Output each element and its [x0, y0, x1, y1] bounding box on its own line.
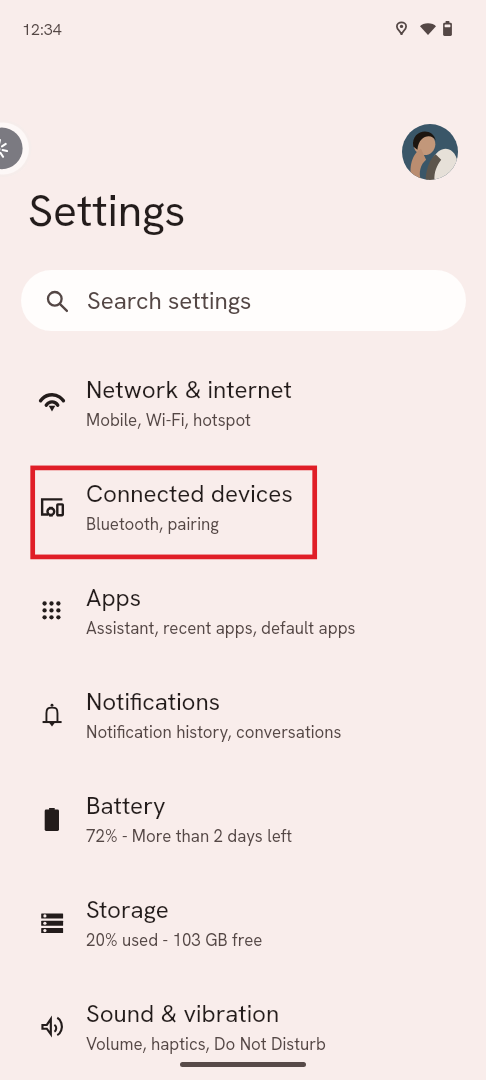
staticText: Bluetooth, pairing: [86, 513, 219, 535]
staticText: 12:34: [22, 19, 62, 40]
staticText: Mobile, Wi-Fi, hotspot: [86, 409, 251, 431]
staticText: Search settings: [87, 285, 252, 317]
staticText: Settings: [28, 181, 186, 239]
staticText: Notifications: [86, 686, 221, 718]
staticText: 20% used - 103 GB free: [86, 929, 263, 951]
staticText: Assistant, recent apps, default apps: [86, 617, 356, 639]
button[interactable]: Notifications: [0, 682, 486, 786]
button[interactable]: Storage: [0, 890, 486, 994]
button[interactable]: Account: [402, 124, 458, 180]
staticText: Notification history, conversations: [86, 721, 342, 743]
button[interactable]: Battery: [0, 786, 486, 890]
staticText: Network & internet: [86, 374, 292, 406]
button[interactable]: Connected devices: [0, 474, 486, 578]
button[interactable]: Apps: [0, 578, 486, 682]
staticText: Volume, haptics, Do Not Disturb: [86, 1033, 327, 1055]
staticText: Connected devices: [86, 478, 293, 510]
staticText: Apps: [86, 582, 142, 614]
staticText: Sound & vibration: [86, 998, 280, 1030]
button[interactable]: Search settings: [21, 270, 466, 331]
staticText: Battery: [86, 790, 166, 822]
staticText: 72% - More than 2 days left: [86, 825, 293, 847]
button[interactable]: Sound & vibration: [0, 994, 486, 1080]
button[interactable]: Network & internet: [0, 370, 486, 474]
staticText: Storage: [86, 894, 169, 926]
